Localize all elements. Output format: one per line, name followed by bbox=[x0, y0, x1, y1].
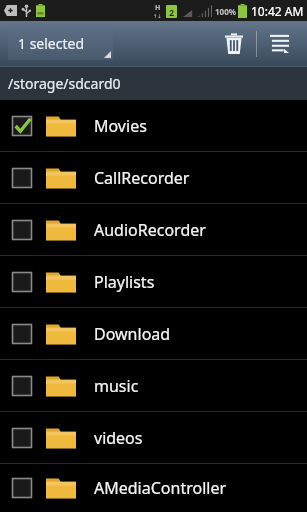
staticText: 100% bbox=[215, 6, 236, 17]
staticText: CallRecorder bbox=[94, 167, 190, 189]
staticText: videos bbox=[94, 427, 143, 449]
button[interactable]: 1 selected bbox=[8, 27, 113, 60]
button[interactable]: Download bbox=[0, 308, 307, 359]
staticText: /storage/sdcard0 bbox=[8, 74, 121, 93]
staticText: 1 selected bbox=[18, 34, 85, 53]
button[interactable]: music bbox=[0, 360, 307, 411]
button[interactable]: AMediaController bbox=[0, 464, 307, 512]
staticText: 2 bbox=[169, 6, 175, 18]
button[interactable]: CallRecorder bbox=[0, 152, 307, 203]
staticText: AudioRecorder bbox=[94, 219, 206, 241]
staticText: H bbox=[155, 3, 161, 13]
button[interactable]: /storage/sdcard0 bbox=[0, 66, 307, 100]
staticText: AMediaController bbox=[94, 477, 227, 499]
staticText: Playlists bbox=[94, 271, 155, 293]
button[interactable]: More options bbox=[257, 21, 301, 66]
button[interactable]: Playlists bbox=[0, 256, 307, 307]
button[interactable]: AudioRecorder bbox=[0, 204, 307, 255]
button[interactable]: videos bbox=[0, 412, 307, 463]
staticText: Download bbox=[94, 323, 171, 345]
staticText: music bbox=[94, 375, 139, 397]
button[interactable]: Movies bbox=[0, 100, 307, 151]
staticText: Movies bbox=[94, 115, 147, 137]
staticText: 10:42 AM bbox=[251, 3, 304, 19]
button[interactable]: Delete bbox=[212, 21, 256, 66]
staticText: ↑↓ bbox=[153, 13, 162, 19]
